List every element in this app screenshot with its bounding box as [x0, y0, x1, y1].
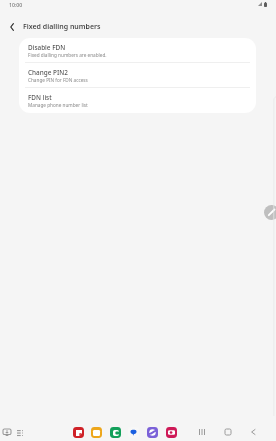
- button[interactable]: Disable FDN: [19, 38, 256, 63]
- staticText: Fixed dialling numbers are enabled.: [28, 52, 107, 58]
- button[interactable]: Gallery: [91, 427, 102, 438]
- staticText: Fixed dialling numbers: [23, 22, 101, 32]
- button[interactable]: Edit: [264, 205, 276, 220]
- button[interactable]: Task list: [14, 427, 25, 438]
- button[interactable]: Phone: [110, 427, 121, 438]
- button[interactable]: Messages: [128, 427, 139, 438]
- button[interactable]: Internet: [147, 427, 158, 438]
- button[interactable]: Change PIN2: [19, 63, 256, 88]
- button[interactable]: Office: [73, 427, 84, 438]
- staticText: FDN list: [28, 93, 52, 102]
- button[interactable]: DeX mode: [1, 427, 12, 438]
- staticText: Manage phone number list: [28, 102, 88, 108]
- staticText: Change PIN2: [28, 68, 68, 77]
- button[interactable]: Home: [222, 426, 234, 438]
- staticText: 10:00: [9, 1, 23, 8]
- staticText: Disable FDN: [28, 43, 66, 52]
- button[interactable]: Navigate up: [1, 16, 22, 37]
- button[interactable]: FDN list: [19, 88, 256, 113]
- button[interactable]: Back: [247, 426, 259, 438]
- staticText: Change PIN for FDN access: [28, 77, 88, 83]
- button[interactable]: Recents: [196, 426, 208, 438]
- button[interactable]: Camera: [166, 427, 177, 438]
